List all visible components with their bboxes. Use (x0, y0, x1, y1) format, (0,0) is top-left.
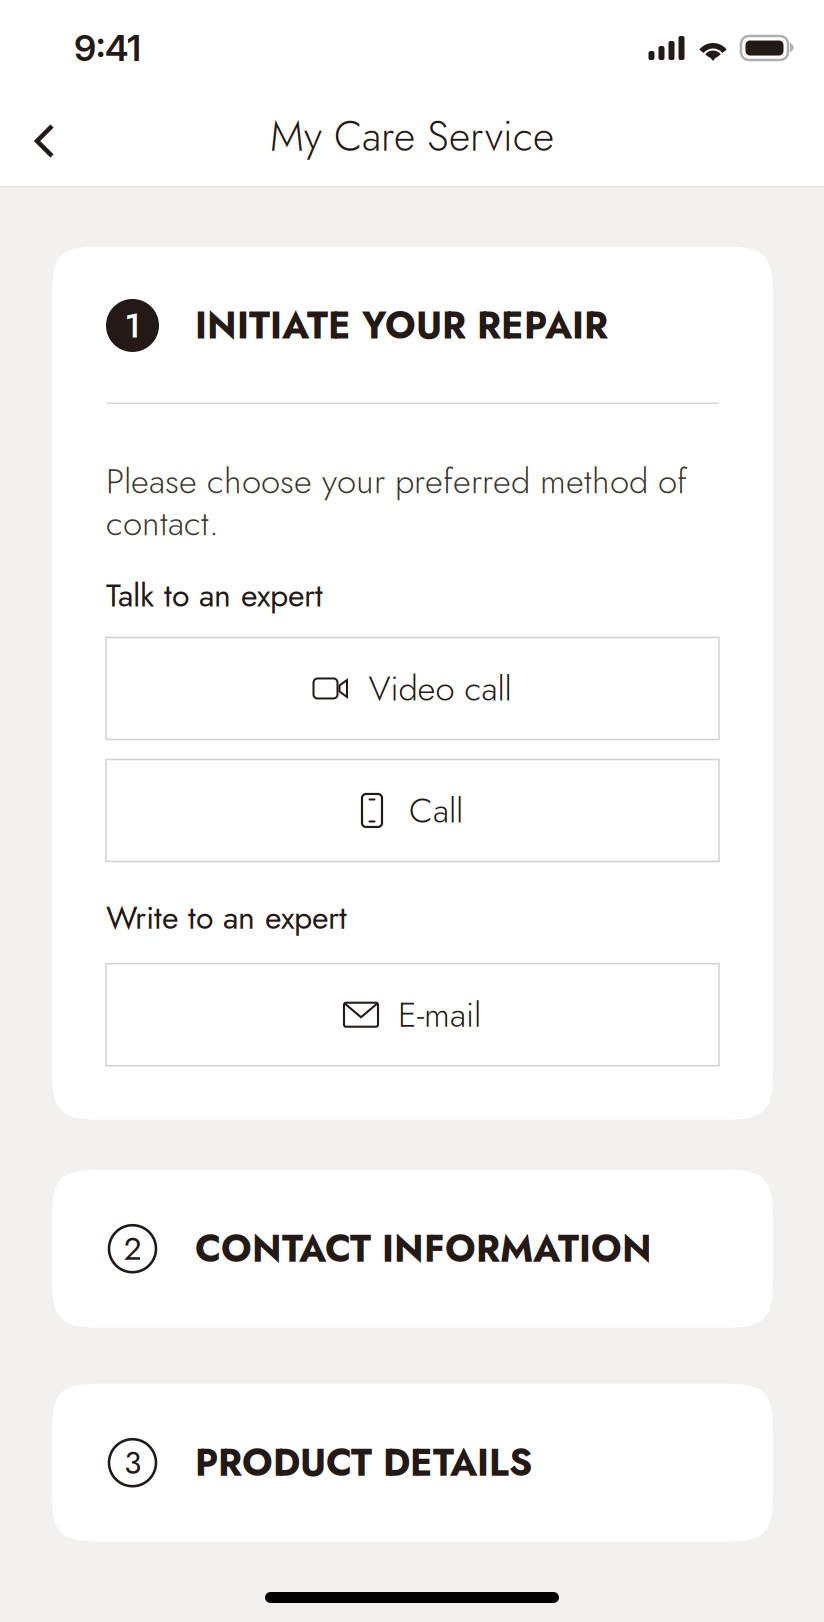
staticText: Video call (368, 663, 511, 713)
staticText: PRODUCT DETAILS (195, 1436, 532, 1490)
staticText: CONTACT INFORMATION (195, 1222, 652, 1276)
button[interactable]: 2 (52, 1170, 773, 1328)
button[interactable]: 3 (52, 1384, 773, 1542)
staticText: Please choose your preferred method of (106, 456, 687, 506)
staticText: 3 (124, 1440, 141, 1486)
button[interactable]: E-mail (106, 964, 719, 1066)
staticText: 1 (124, 300, 140, 350)
staticText: My Care Service (270, 107, 554, 166)
staticText: 2 (123, 1226, 141, 1272)
button[interactable]: Video call (106, 637, 719, 739)
button[interactable]: Back (0, 96, 80, 186)
staticText: INITIATE YOUR REPAIR (195, 298, 608, 352)
staticText: E-mail (398, 990, 481, 1040)
staticText: Call (409, 785, 463, 835)
staticText: contact. (106, 498, 219, 548)
staticText: Write to an expert (106, 894, 347, 941)
staticText: Talk to an expert (106, 572, 323, 618)
button[interactable]: Call (106, 759, 719, 861)
staticText: 9:41 (74, 26, 141, 70)
